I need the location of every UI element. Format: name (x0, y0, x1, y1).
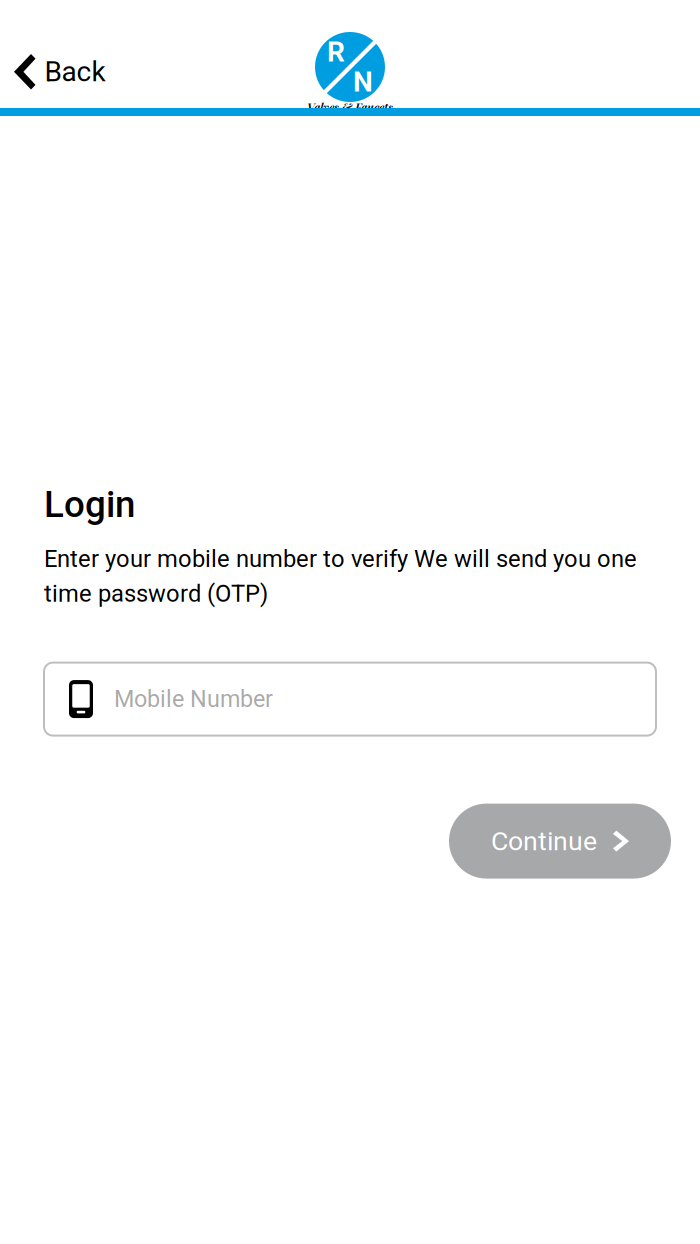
button[interactable]: Continue (449, 804, 671, 879)
staticText: Continue (491, 825, 597, 857)
staticText: R (327, 36, 345, 68)
staticText: Enter your mobile number to verify We wi… (44, 545, 637, 608)
staticText: Login (44, 483, 135, 526)
staticText: N (353, 66, 373, 98)
staticText: Valves & Faucets (307, 99, 393, 114)
staticText: Mobile Number (114, 685, 273, 713)
button[interactable]: Back (0, 50, 121, 93)
staticText: Back (44, 55, 105, 88)
button[interactable]: Mobile Number (44, 663, 656, 736)
